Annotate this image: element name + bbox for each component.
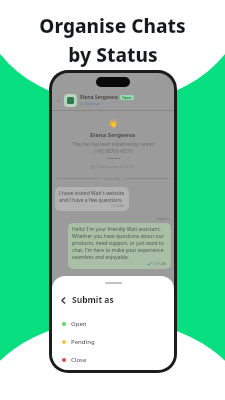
- staticText: Sophiya: [156, 216, 170, 221]
- other: Back: [55, 97, 62, 104]
- button[interactable]: Pending: [52, 333, 174, 351]
- staticText: Organise Chats: [39, 13, 186, 39]
- staticText: Pending: [71, 338, 95, 346]
- staticText: Open: [122, 95, 132, 100]
- staticText: Open: [71, 320, 87, 328]
- staticText: Close: [71, 356, 87, 364]
- staticText: I have visited Wati's website and I have…: [59, 190, 125, 204]
- staticText: Elena Sergeeva: [80, 94, 118, 101]
- staticText: Chat expire in 23:59: [97, 164, 135, 169]
- staticText: The chat has been initialized by contact: [72, 141, 155, 147]
- staticText: by Status: [68, 42, 158, 68]
- button[interactable]: Back: [52, 90, 174, 110]
- staticText: Sophiya ~: [85, 101, 104, 106]
- staticText: Yesterday: [101, 176, 124, 181]
- other: Back: [59, 296, 68, 305]
- staticText: Elena Sergeeva: [90, 131, 136, 139]
- staticText: (+91) 88765-43210: [94, 148, 133, 154]
- staticText: Submit as: [72, 294, 114, 306]
- button[interactable]: Back: [52, 294, 174, 306]
- button[interactable]: Open: [52, 315, 174, 333]
- button[interactable]: Close: [52, 351, 174, 369]
- staticText: Hello! I'm your friendly Wati assistant.…: [72, 226, 167, 261]
- staticText: 👋: [108, 119, 118, 128]
- staticText: 10:14 AM: [111, 204, 125, 208]
- staticText: 10:15 AM: [153, 262, 167, 266]
